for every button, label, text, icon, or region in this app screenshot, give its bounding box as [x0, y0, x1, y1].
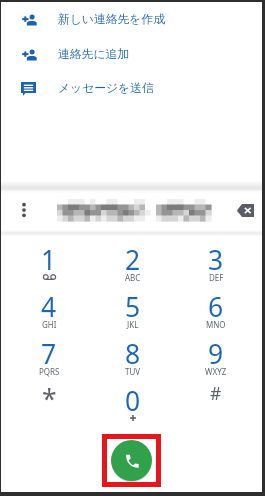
- staticText: 8: [125, 336, 141, 372]
- staticText: 4: [41, 289, 57, 325]
- button[interactable]: 1: [14, 234, 84, 284]
- staticText: *: [42, 381, 57, 417]
- staticText: TUV: [125, 366, 141, 377]
- button[interactable]: 3: [181, 234, 251, 284]
- staticText: ABC: [125, 272, 141, 283]
- button[interactable]: メッセージを送信: [1, 72, 262, 106]
- staticText: WXYZ: [205, 366, 227, 377]
- button[interactable]: *: [14, 375, 84, 425]
- button[interactable]: #: [181, 375, 251, 425]
- staticText: MNO: [206, 319, 226, 330]
- button[interactable]: 4: [14, 281, 84, 331]
- staticText: JKL: [127, 319, 139, 330]
- staticText: 1: [41, 242, 57, 278]
- button[interactable]: 連絡先に追加: [1, 38, 262, 72]
- button[interactable]: 削除: [233, 188, 257, 232]
- staticText: DEF: [209, 272, 224, 283]
- staticText: 9: [208, 336, 224, 372]
- button[interactable]: 新しい連絡先を作成: [1, 3, 262, 37]
- staticText: 連絡先に追加: [58, 47, 130, 62]
- staticText: 2: [125, 242, 141, 278]
- staticText: 7: [41, 336, 57, 372]
- button[interactable]: 8: [98, 328, 168, 378]
- button[interactable]: 0: [98, 375, 168, 425]
- button[interactable]: 7: [14, 328, 84, 378]
- staticText: 0: [125, 383, 141, 419]
- staticText: 6: [208, 289, 224, 325]
- staticText: GHI: [42, 319, 57, 330]
- button[interactable]: 2: [98, 234, 168, 284]
- staticText: 新しい連絡先を作成: [58, 12, 166, 27]
- button[interactable]: 9: [181, 328, 251, 378]
- staticText: PQRS: [39, 366, 60, 377]
- staticText: 5: [125, 289, 141, 325]
- button[interactable]: その他のオプション: [14, 188, 34, 232]
- staticText: #: [210, 381, 222, 405]
- staticText: メッセージを送信: [58, 81, 154, 96]
- button[interactable]: 発信: [111, 440, 152, 481]
- staticText: 3: [208, 242, 224, 278]
- button[interactable]: 6: [181, 281, 251, 331]
- button[interactable]: 5: [98, 281, 168, 331]
